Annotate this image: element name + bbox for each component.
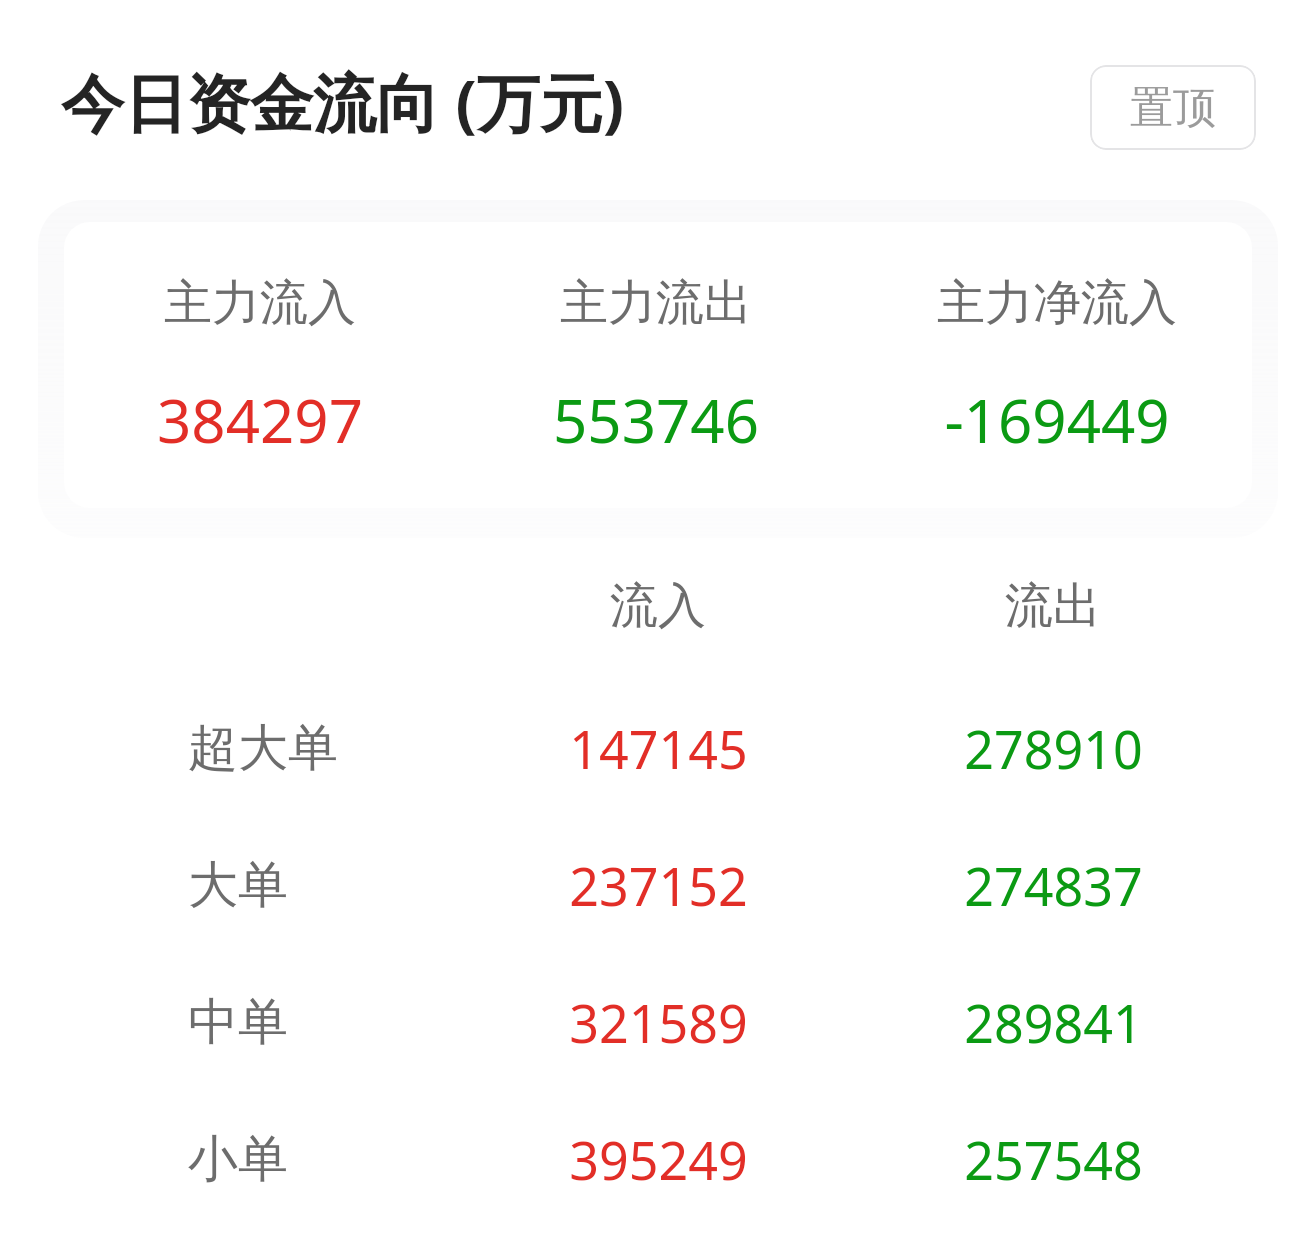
staticText: 257548 — [964, 1124, 1143, 1195]
staticText: 主力流入 — [164, 273, 356, 333]
staticText: 主力流出 — [560, 273, 752, 333]
staticText: 237152 — [569, 850, 748, 921]
staticText: 289841 — [964, 987, 1143, 1058]
staticText: 今日资金流向 (万元) — [61, 59, 625, 145]
staticText: 流出 — [1005, 576, 1101, 636]
button[interactable] — [0, 954, 1316, 1090]
staticText: 中单 — [188, 991, 288, 1054]
staticText: 321589 — [569, 987, 748, 1058]
staticText: 384297 — [157, 379, 363, 461]
button[interactable] — [0, 680, 1316, 816]
staticText: 大单 — [188, 854, 288, 917]
staticText: 小单 — [188, 1128, 288, 1191]
staticText: 278910 — [964, 713, 1143, 784]
staticText: 274837 — [964, 850, 1143, 921]
button[interactable] — [0, 817, 1316, 953]
staticText: 395249 — [569, 1124, 748, 1195]
staticText: 置顶 — [1130, 81, 1216, 135]
button[interactable] — [64, 222, 1252, 508]
button[interactable]: 置顶 — [1090, 65, 1256, 150]
staticText: 147145 — [569, 713, 748, 784]
staticText: 553746 — [553, 379, 759, 461]
button[interactable] — [0, 1091, 1316, 1227]
staticText: -169449 — [944, 379, 1170, 461]
staticText: 主力净流入 — [937, 273, 1177, 333]
staticText: 流入 — [610, 576, 706, 636]
staticText: 超大单 — [188, 717, 338, 780]
